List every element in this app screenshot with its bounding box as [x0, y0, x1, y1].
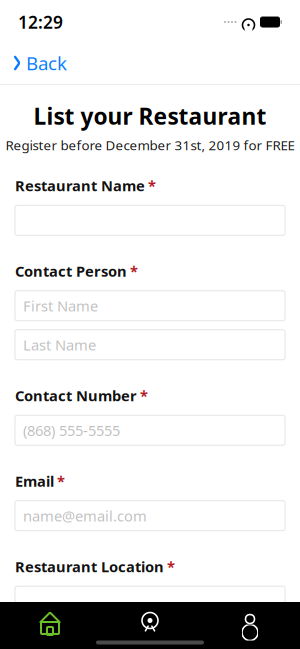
staticText: Restaurant Name — [15, 176, 145, 195]
staticText: 12:29 — [18, 10, 63, 33]
button[interactable]: Back — [2, 47, 77, 79]
staticText: Back — [26, 51, 67, 75]
button[interactable]: Last Name — [15, 330, 285, 360]
staticText: * — [148, 176, 156, 195]
staticText: Restaurant Location — [15, 557, 164, 576]
staticText: List your Restaurant — [33, 101, 266, 131]
staticText: Last Name — [23, 335, 96, 354]
button[interactable]: Profile — [200, 606, 300, 640]
button[interactable]: name@email.com — [15, 501, 285, 531]
button[interactable]: Locations — [100, 606, 200, 640]
staticText: * — [57, 471, 65, 491]
staticText: * — [130, 261, 138, 281]
button[interactable]: Home — [0, 606, 100, 640]
staticText: (868) 555-5555 — [23, 420, 120, 440]
staticText: Email — [15, 471, 54, 491]
staticText: Contact Number — [15, 386, 137, 405]
staticText: * — [140, 386, 148, 405]
button[interactable]: First Name — [15, 291, 285, 321]
staticText: Contact Person — [15, 261, 127, 281]
button[interactable] — [15, 205, 285, 235]
button[interactable] — [15, 586, 285, 616]
staticText: * — [167, 557, 175, 576]
staticText: Register before December 31st, 2019 for … — [5, 136, 294, 154]
button[interactable]: (868) 555-5555 — [15, 415, 285, 445]
staticText: name@email.com — [23, 506, 147, 525]
staticText: First Name — [23, 296, 98, 315]
